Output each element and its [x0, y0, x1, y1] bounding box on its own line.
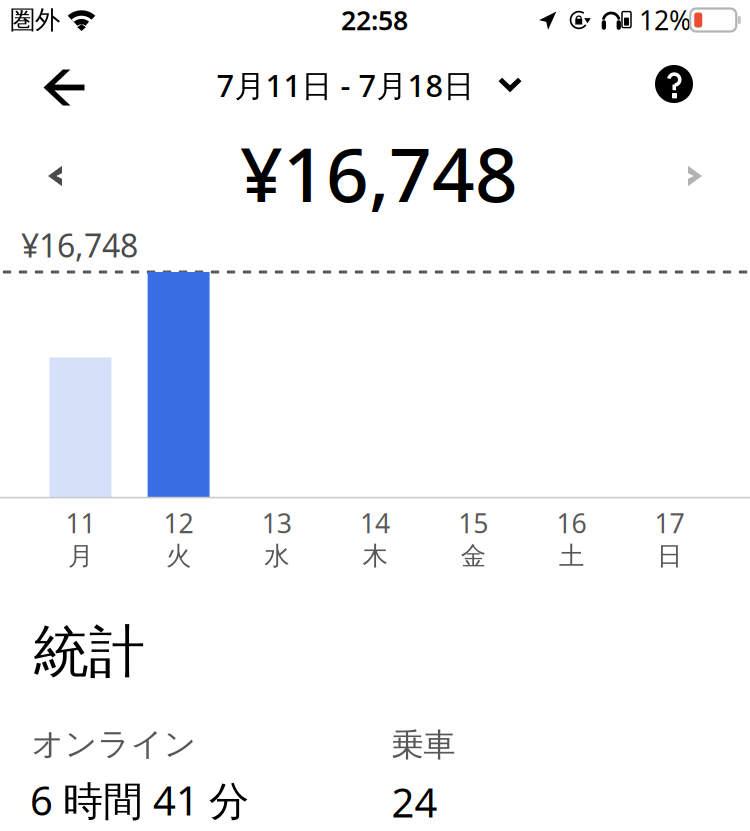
button[interactable]: Help: [634, 48, 714, 120]
staticText: 月: [68, 540, 93, 571]
staticText: 水: [264, 540, 289, 571]
staticText: ¥16,748: [21, 224, 138, 266]
staticText: 圏外: [10, 4, 60, 35]
staticText: 日: [657, 540, 682, 571]
button[interactable]: Next week: [645, 136, 745, 216]
staticText: 12%: [639, 2, 691, 38]
staticText: 土: [559, 540, 584, 571]
staticText: 12: [164, 505, 194, 541]
button[interactable]: 7月11日 - 7月18日: [216, 49, 521, 121]
staticText: 統計: [33, 618, 145, 686]
staticText: オンライン: [31, 724, 196, 764]
staticText: 22:58: [341, 2, 408, 38]
staticText: 24: [391, 775, 437, 828]
staticText: 11: [65, 505, 95, 541]
staticText: 16: [556, 505, 586, 541]
staticText: 15: [458, 505, 488, 541]
staticText: 7月11日 - 7月18日: [216, 65, 474, 105]
button[interactable]: Back: [17, 51, 111, 123]
staticText: 6 時間 41 分: [30, 773, 249, 826]
staticText: 火: [166, 540, 191, 571]
staticText: ¥16,748: [240, 123, 518, 223]
staticText: 金: [461, 540, 486, 571]
button[interactable]: Previous week: [5, 136, 105, 216]
staticText: 木: [362, 540, 387, 571]
staticText: 13: [262, 505, 292, 541]
staticText: 17: [655, 505, 685, 541]
staticText: 14: [360, 505, 390, 541]
staticText: 乗車: [391, 725, 455, 765]
